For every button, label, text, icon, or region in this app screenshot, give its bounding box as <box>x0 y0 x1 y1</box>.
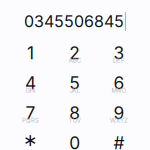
button[interactable]: 2 <box>52 38 97 68</box>
staticText: TUV <box>69 117 81 124</box>
staticText: MNO <box>111 87 126 94</box>
staticText: 5 <box>69 72 80 93</box>
button[interactable]: 4 <box>8 68 53 98</box>
staticText: DEF <box>113 57 125 64</box>
staticText: 0 <box>69 132 80 150</box>
staticText: 2 <box>69 42 80 63</box>
button[interactable]: # <box>97 128 141 150</box>
staticText: 9 <box>113 102 124 123</box>
staticText: 6 <box>113 72 124 93</box>
staticText: 7 <box>25 102 35 123</box>
button[interactable]: 5 <box>52 68 97 98</box>
staticText: GHI <box>25 87 35 94</box>
staticText: 1 <box>27 42 34 63</box>
staticText: WXYZ <box>110 117 128 124</box>
staticText: JKL <box>70 87 80 94</box>
button[interactable]: 9 <box>97 98 141 128</box>
button[interactable]: 3 <box>97 38 141 68</box>
staticText: ∗ <box>23 130 38 150</box>
button[interactable]: 7 <box>8 98 53 128</box>
staticText: ABC <box>69 57 81 64</box>
staticText: # <box>113 132 124 150</box>
staticText: 3 <box>113 42 124 63</box>
button[interactable]: 1 <box>8 38 53 68</box>
button[interactable]: 0 <box>52 128 97 150</box>
button[interactable]: 6 <box>97 68 141 98</box>
staticText: 0345506845 <box>24 12 124 31</box>
staticText: 4 <box>25 72 36 93</box>
staticText: 8 <box>69 102 80 123</box>
staticText: PQRS <box>22 117 39 124</box>
button[interactable]: ∗ <box>8 128 53 150</box>
button[interactable]: 8 <box>52 98 97 128</box>
